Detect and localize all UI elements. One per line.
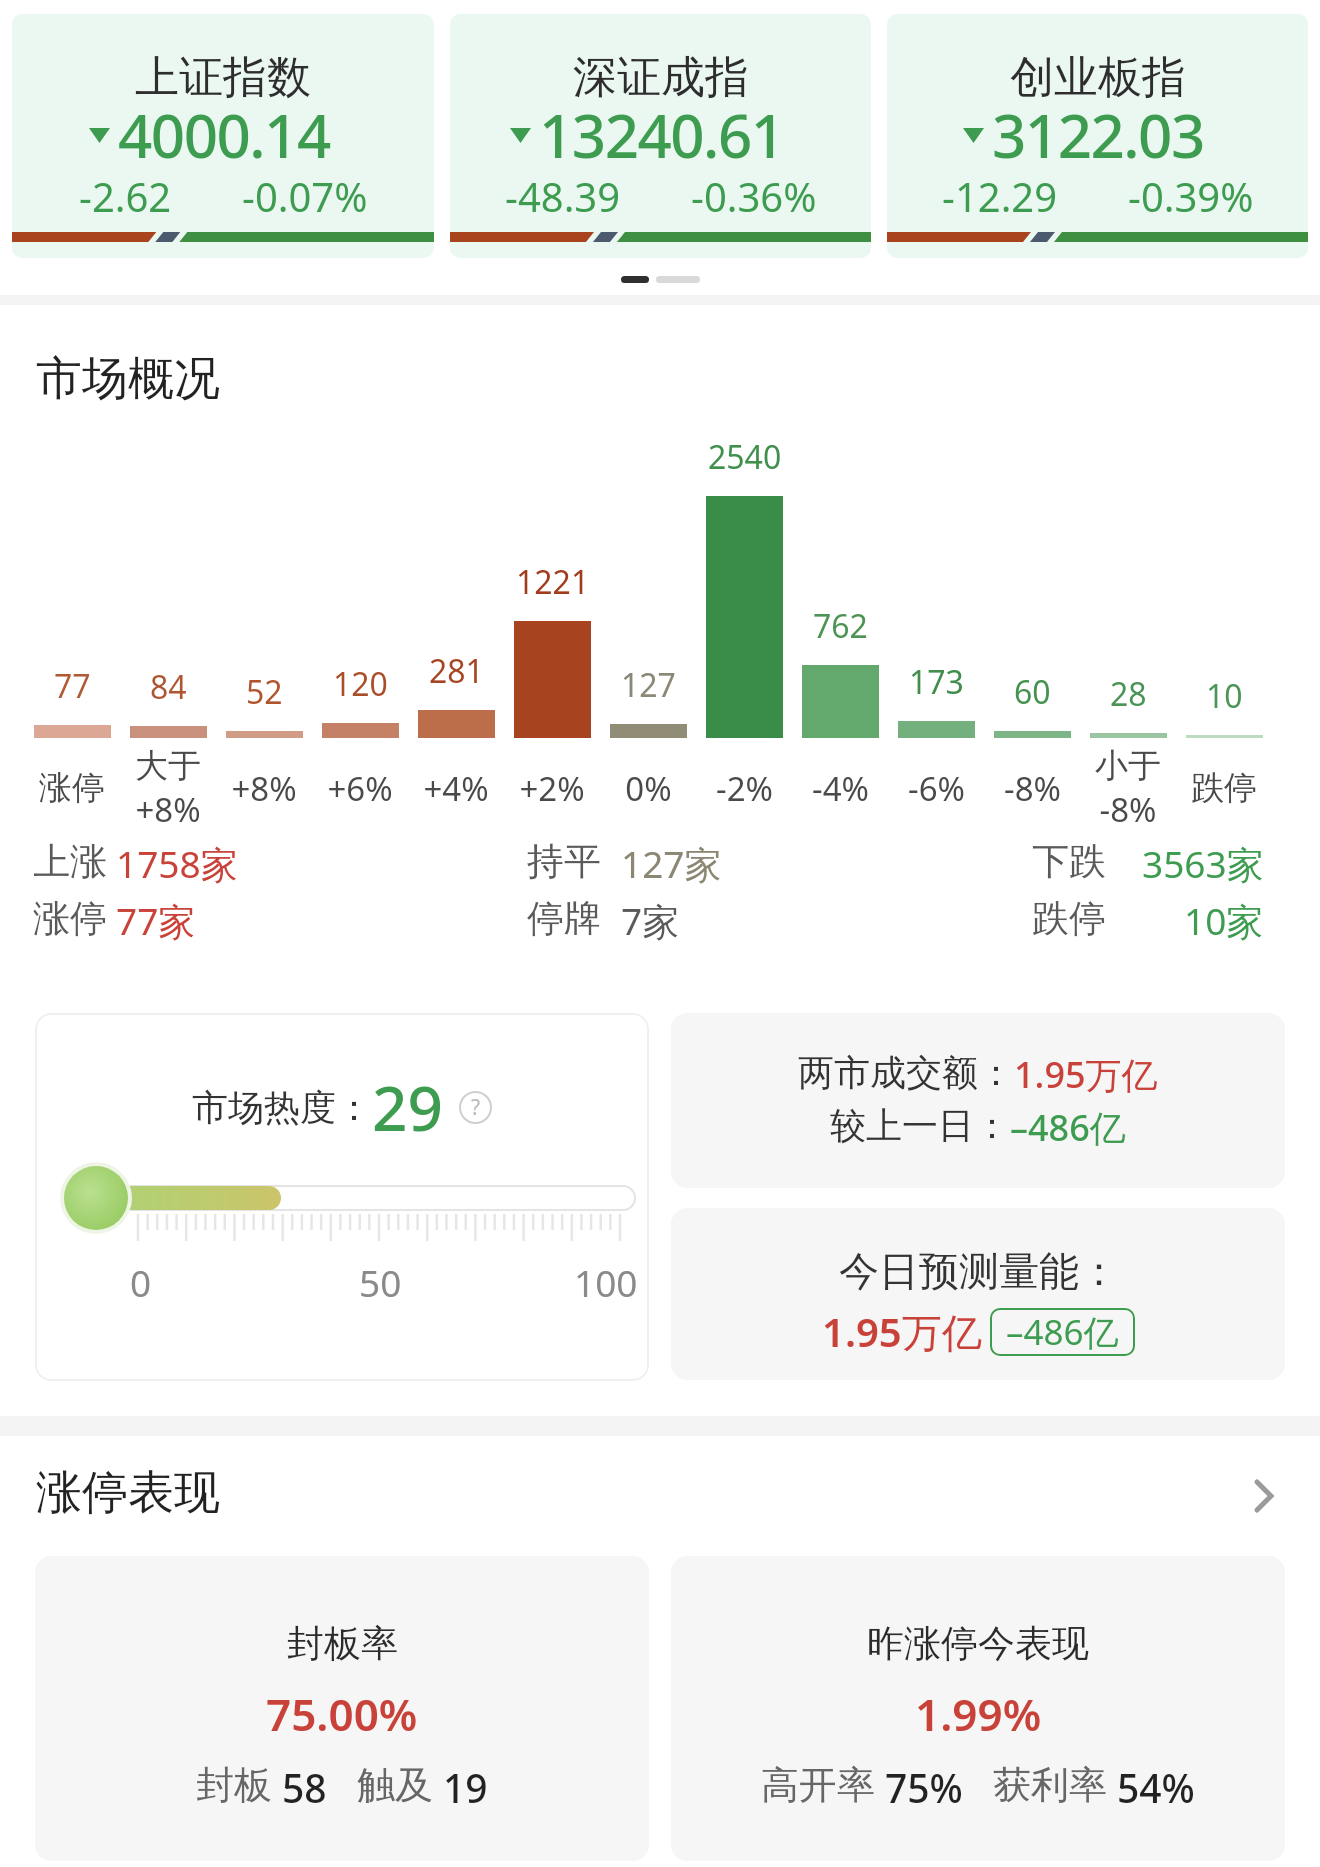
staticText: +8% [231,766,297,811]
staticText: 触及 [357,1761,433,1809]
staticText: -4% [812,766,869,811]
staticText: 762 [813,604,868,648]
button[interactable]: 今日预测量能： [671,1208,1285,1380]
staticText: 75.00% [266,1684,418,1744]
staticText: 较上一日： [830,1103,1010,1148]
button[interactable]: 上证指数 [12,14,434,258]
staticText: 涨停表现 [36,1464,220,1522]
staticText: 77 [54,664,91,708]
staticText: 停牌 [527,895,601,941]
staticText: 上涨 [33,838,107,884]
staticText: 下跌 [1032,838,1106,884]
staticText: +2% [519,766,585,811]
button[interactable]: 两市成交额： [671,1013,1285,1188]
staticText: ? [471,1093,481,1122]
staticText: 13240.61 [539,94,784,176]
staticText: 127家 [621,838,722,884]
staticText: 173 [909,660,964,704]
staticText: 54% [1117,1761,1195,1814]
staticText: 跌停 [1032,895,1106,941]
staticText: 60 [1014,670,1051,714]
staticText: -0.39% [1128,169,1254,223]
staticText: 0 [130,1257,152,1307]
staticText: 28 [1110,672,1147,716]
staticText: 昨涨停今表现 [867,1620,1089,1667]
staticText: 100 [574,1257,638,1307]
staticText: 获利率 [993,1761,1107,1809]
staticText: 深证成指 [573,50,749,105]
staticText: 3122.03 [992,94,1204,176]
button[interactable]: 封板率 [35,1556,649,1861]
staticText: 52 [246,670,283,714]
staticText: 50 [359,1257,402,1307]
staticText: 1.95万亿 [822,1304,982,1359]
staticText: –486亿 [1006,1308,1119,1356]
staticText: 1.95万亿 [1014,1050,1158,1099]
staticText: +4% [423,766,489,811]
staticText: -0.07% [242,169,368,223]
staticText: 4000.14 [118,94,330,176]
staticText: 58 [282,1761,327,1814]
staticText: –486亿 [1010,1103,1126,1152]
staticText: 1221 [516,560,590,604]
staticText: 持平 [527,838,601,884]
button[interactable]: 市场热度： [35,1013,649,1381]
staticText: 高开率 [761,1761,875,1809]
staticText: 市场热度： [192,1085,372,1130]
staticText: 1.99% [915,1684,1042,1744]
button[interactable]: 昨涨停今表现 [671,1556,1285,1861]
staticText: 19 [443,1761,488,1814]
staticText: 大于 +8% [135,745,201,831]
staticText: 10家 [1184,895,1264,941]
staticText: 今日预测量能： [839,1246,1119,1296]
staticText: -12.29 [942,169,1058,223]
staticText: 封板率 [287,1620,398,1667]
staticText: 市场概况 [36,350,220,408]
staticText: 封板 [196,1761,272,1809]
staticText: 创业板指 [1010,50,1186,105]
staticText: -48.39 [505,169,621,223]
staticText: -0.36% [691,169,817,223]
staticText: 120 [333,662,388,706]
staticText: -2% [716,766,773,811]
button[interactable]: 深证成指 [450,14,871,258]
staticText: -8% [1004,766,1061,811]
staticText: 77家 [116,895,196,941]
staticText: +6% [327,766,393,811]
button[interactable]: 创业板指 [887,14,1308,258]
staticText: 29 [372,1065,443,1149]
staticText: 2540 [708,435,782,479]
staticText: 127 [621,663,676,707]
staticText: 0% [625,766,672,811]
button[interactable]: 涨停表现 [36,1464,1284,1522]
staticText: 84 [150,665,187,709]
staticText: -2.62 [79,169,172,223]
staticText: 1758家 [116,838,238,884]
staticText: 上证指数 [135,50,311,105]
staticText: 3563家 [1142,838,1264,884]
staticText: 小于 -8% [1095,745,1161,831]
staticText: -6% [908,766,965,811]
staticText: 281 [429,649,484,693]
staticText: 涨停 [39,767,105,809]
staticText: 10 [1206,674,1243,718]
staticText: 涨停 [33,895,107,941]
staticText: 跌停 [1191,767,1257,809]
staticText: 7家 [621,895,680,941]
staticText: 75% [885,1761,963,1814]
staticText: 两市成交额： [798,1050,1014,1095]
